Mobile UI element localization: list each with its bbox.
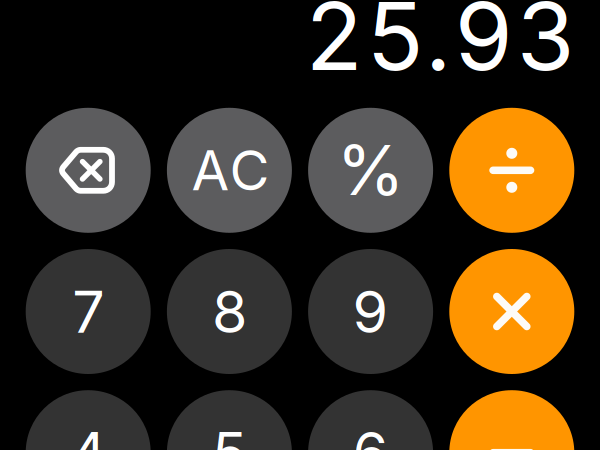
staticText: 5 <box>212 418 247 450</box>
staticText: 4 <box>70 418 107 450</box>
button[interactable]: % <box>308 108 433 233</box>
staticText: 8 <box>212 277 247 347</box>
button[interactable]: 4 <box>26 390 151 450</box>
button[interactable]: Delete <box>26 108 151 233</box>
button[interactable]: Divide <box>449 108 574 233</box>
button[interactable]: 8 <box>167 249 292 374</box>
button[interactable]: Subtract <box>449 390 574 450</box>
staticText: 9 <box>353 277 389 347</box>
staticText: AC <box>191 137 269 203</box>
button[interactable]: Multiply <box>449 249 574 374</box>
staticText: 6 <box>353 418 389 450</box>
staticText: 7 <box>72 277 104 347</box>
button[interactable]: 5 <box>167 390 292 450</box>
button[interactable]: 7 <box>26 249 151 374</box>
button[interactable]: 6 <box>308 390 433 450</box>
button[interactable]: 9 <box>308 249 433 374</box>
staticText: % <box>337 128 405 212</box>
staticText: 25.93 <box>306 0 575 92</box>
button[interactable]: AC <box>167 108 292 233</box>
